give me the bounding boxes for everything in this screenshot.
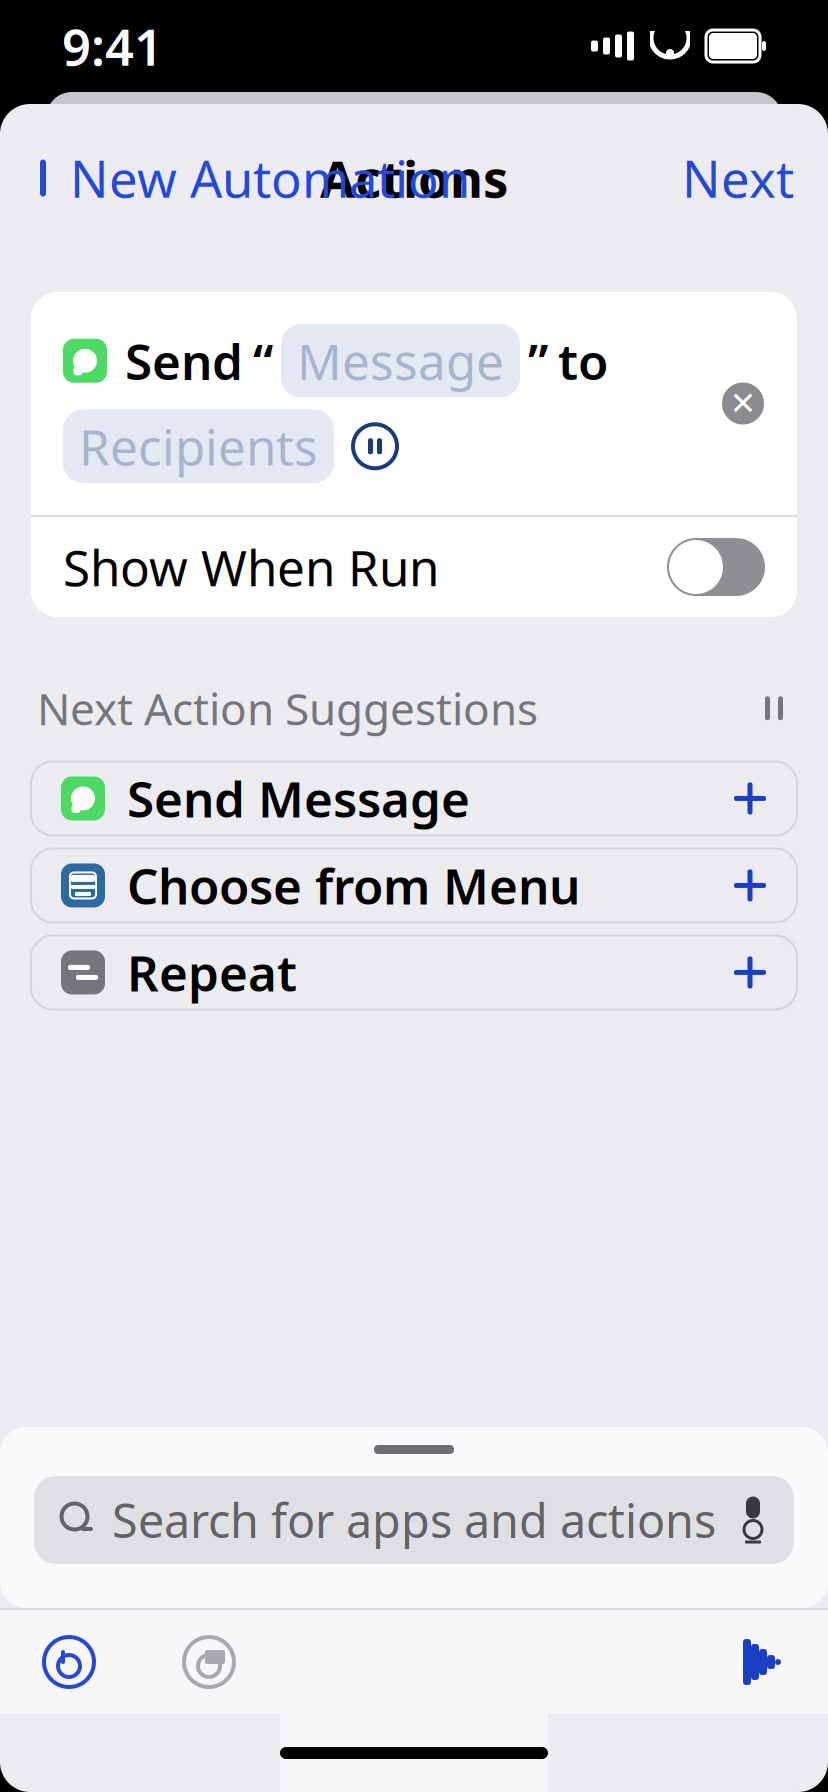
button[interactable]: Remove action — [721, 381, 765, 425]
staticText: Choose from Menu — [127, 853, 580, 918]
staticText: Send — [125, 328, 243, 393]
button[interactable]: Choose from Menu — [31, 848, 797, 922]
button[interactable]: Show When Run — [31, 517, 797, 617]
staticText: ✕ — [729, 385, 756, 422]
staticText: Next — [682, 144, 794, 212]
button[interactable]: Redo — [182, 1635, 236, 1689]
staticText: “ — [253, 328, 273, 393]
staticText: Search for apps and actions — [112, 1489, 716, 1551]
button[interactable]: New Automation — [34, 134, 470, 222]
button[interactable]: Repeat — [31, 935, 797, 1009]
button[interactable]: Undo — [42, 1635, 96, 1689]
staticText: Show When Run — [63, 534, 439, 600]
staticText: Actions — [320, 144, 508, 212]
staticText: Send Message — [127, 766, 470, 831]
button[interactable]: Search for apps and actions — [34, 1476, 794, 1564]
staticText: New Automation — [70, 144, 470, 212]
staticText: Recipients — [79, 413, 318, 479]
staticText: Message — [297, 328, 504, 393]
button[interactable]: Send Message — [31, 761, 797, 835]
staticText: to — [558, 328, 608, 393]
button[interactable]: Next — [682, 134, 794, 222]
button[interactable]: Next Action Suggestions — [37, 673, 791, 743]
staticText: 9:41 — [62, 12, 163, 80]
staticText: ” — [528, 328, 548, 393]
staticText: Next Action Suggestions — [37, 679, 538, 737]
staticText: Repeat — [127, 940, 297, 1005]
button[interactable]: Run shortcut — [738, 1637, 786, 1687]
button[interactable]: Expand recipients — [334, 423, 398, 469]
